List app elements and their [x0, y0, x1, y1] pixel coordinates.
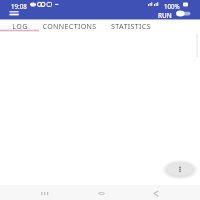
button[interactable]: CONNECTIONS [39, 20, 100, 32]
button[interactable]: More options [163, 157, 197, 181]
staticText: CONNECTIONS [42, 21, 97, 31]
button[interactable]: Home [94, 187, 108, 199]
button[interactable]: Run toggle [174, 9, 194, 20]
button[interactable]: Open navigation menu [4, 9, 24, 20]
button[interactable]: STATISTICS [100, 20, 162, 32]
staticText: 100% [164, 2, 180, 10]
staticText: STATISTICS [111, 21, 151, 31]
button[interactable]: Back [149, 187, 163, 199]
staticText: RUN [158, 11, 172, 20]
staticText: LOG [12, 21, 28, 31]
button[interactable]: Recents [37, 187, 51, 199]
staticText: 19:08 [11, 2, 27, 10]
button[interactable]: LOG [0, 20, 39, 32]
